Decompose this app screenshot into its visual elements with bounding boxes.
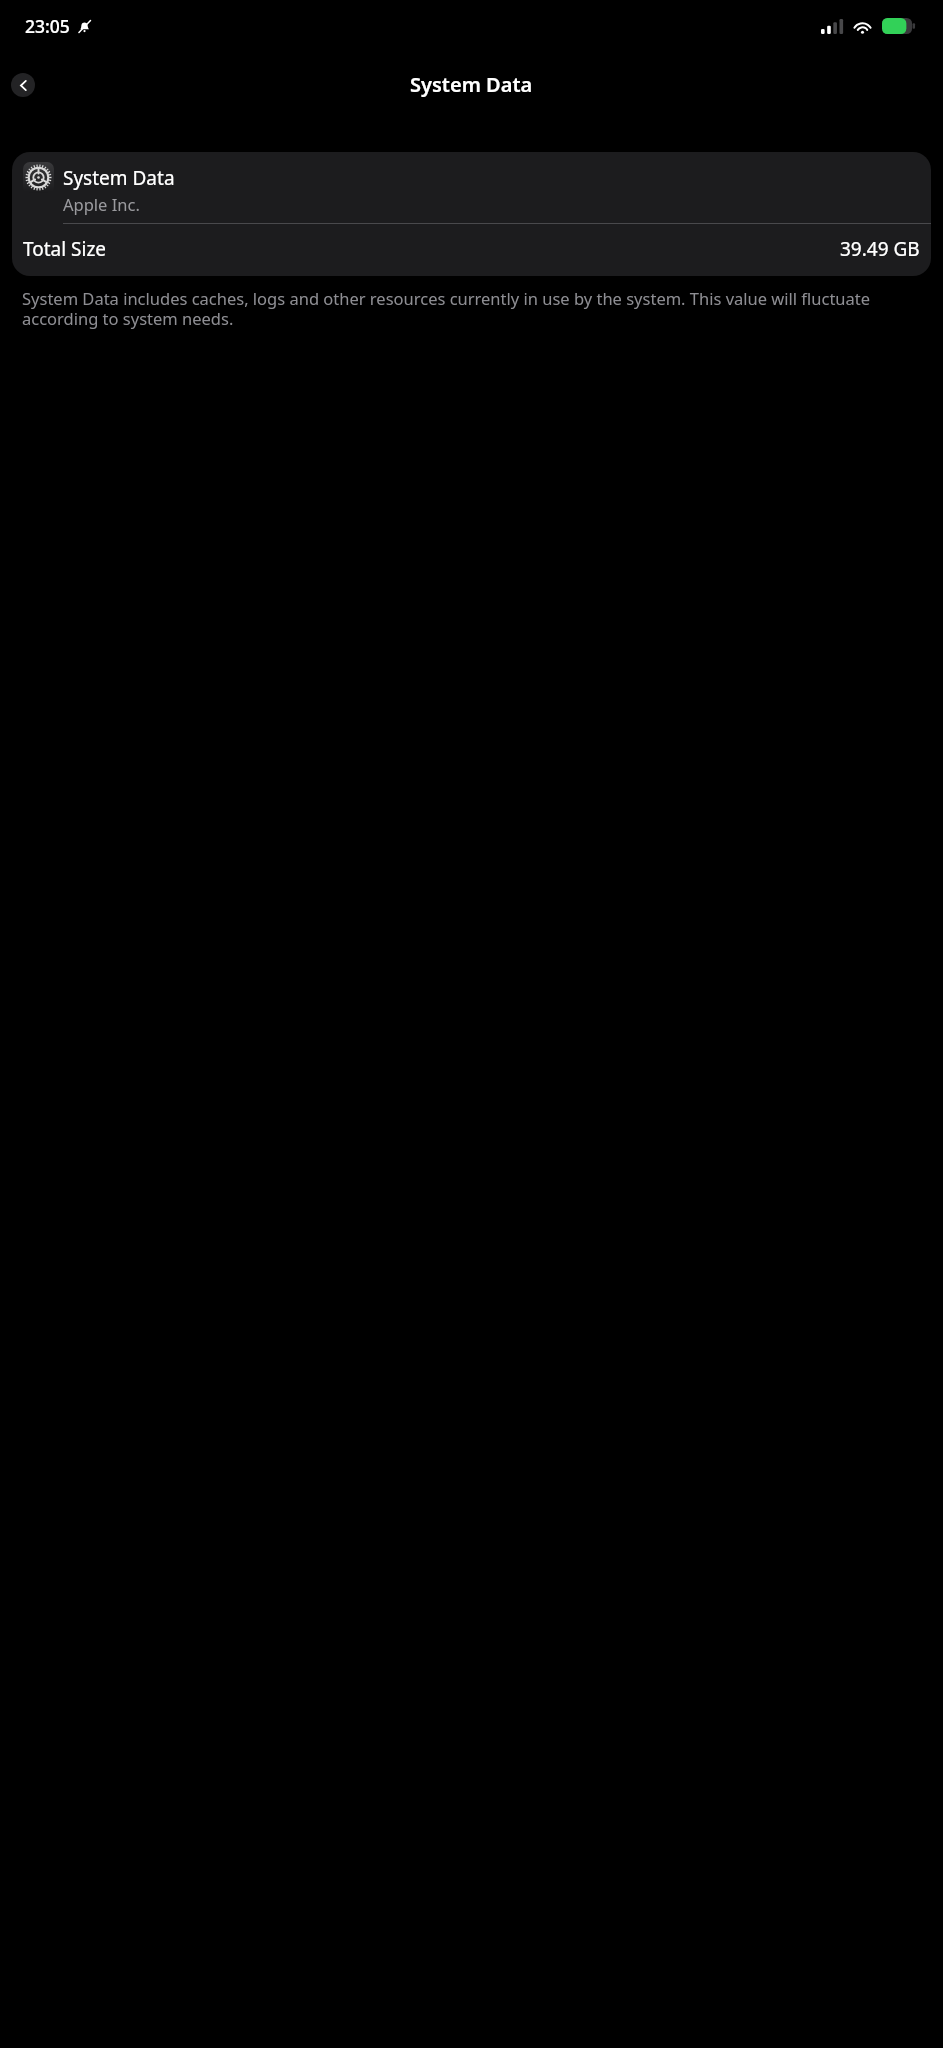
staticText: 23:05 xyxy=(25,14,70,38)
button[interactable]: System Data xyxy=(12,152,931,276)
staticText: System Data includes caches, logs and ot… xyxy=(22,287,921,330)
staticText: 39.49 GB xyxy=(840,236,920,262)
button[interactable]: Back xyxy=(11,73,35,97)
staticText: System Data xyxy=(410,71,533,98)
staticText: System Data xyxy=(63,165,175,191)
staticText: Total Size xyxy=(23,236,107,262)
staticText: Apple Inc. xyxy=(63,193,140,215)
